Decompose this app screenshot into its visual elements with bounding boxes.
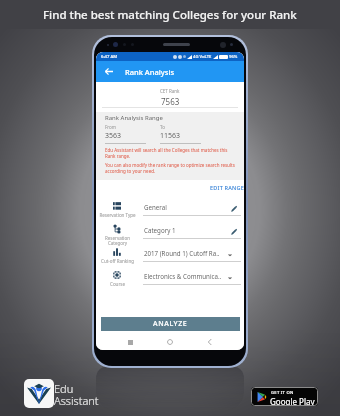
button[interactable]: Get it on Google Play <box>251 387 318 406</box>
staticText: EDIT RANGE <box>210 184 244 191</box>
staticText: Reservation Category <box>105 235 130 247</box>
staticText: Find the best matching Colleges for your… <box>43 7 297 23</box>
staticText: From <box>105 124 117 130</box>
button[interactable]: Reservation Category <box>96 221 244 244</box>
staticText: 3563 <box>105 131 122 141</box>
staticText: You can also modify the rank range to op… <box>105 162 238 174</box>
staticText: 2017 (Round 1) Cutoff Ra.. <box>144 249 220 257</box>
staticText: 7563 <box>161 96 180 107</box>
staticText: Edu Assistant will search all the Colleg… <box>105 147 238 159</box>
button[interactable]: Reservation Type <box>96 198 244 221</box>
staticText: Rank Analysis Range <box>105 114 163 122</box>
staticText: Cut-off Ranking <box>101 258 134 264</box>
button[interactable]: Back <box>102 65 115 78</box>
staticText: 4G VoLTE <box>193 54 212 60</box>
staticText: ANALYZE <box>153 319 188 329</box>
staticText: 6:47 AM <box>101 54 118 60</box>
staticText: Course <box>110 281 125 287</box>
button[interactable]: Cut-off Ranking <box>96 244 244 267</box>
staticText: To <box>160 124 165 130</box>
staticText: 11563 <box>160 131 181 141</box>
button[interactable]: Back <box>204 336 216 348</box>
staticText: 96% <box>229 54 238 60</box>
staticText: CET Rank <box>160 88 180 94</box>
staticText: Reservation Type <box>99 212 136 218</box>
button[interactable]: EDIT RANGE <box>208 183 244 192</box>
staticText: Google Play <box>270 396 315 406</box>
button[interactable]: ANALYZE <box>101 317 240 331</box>
button[interactable]: Course <box>96 267 244 290</box>
staticText: General <box>144 203 167 211</box>
staticText: GET IT ON <box>271 390 294 396</box>
button[interactable]: Home <box>164 336 176 348</box>
staticText: Edu <box>54 381 74 396</box>
staticText: Rank Analysis <box>125 67 175 77</box>
button[interactable]: Recents <box>124 336 136 348</box>
staticText: Electronics & Communica.. <box>144 272 222 280</box>
staticText: Category 1 <box>144 226 176 234</box>
staticText: Assistant <box>54 393 99 408</box>
